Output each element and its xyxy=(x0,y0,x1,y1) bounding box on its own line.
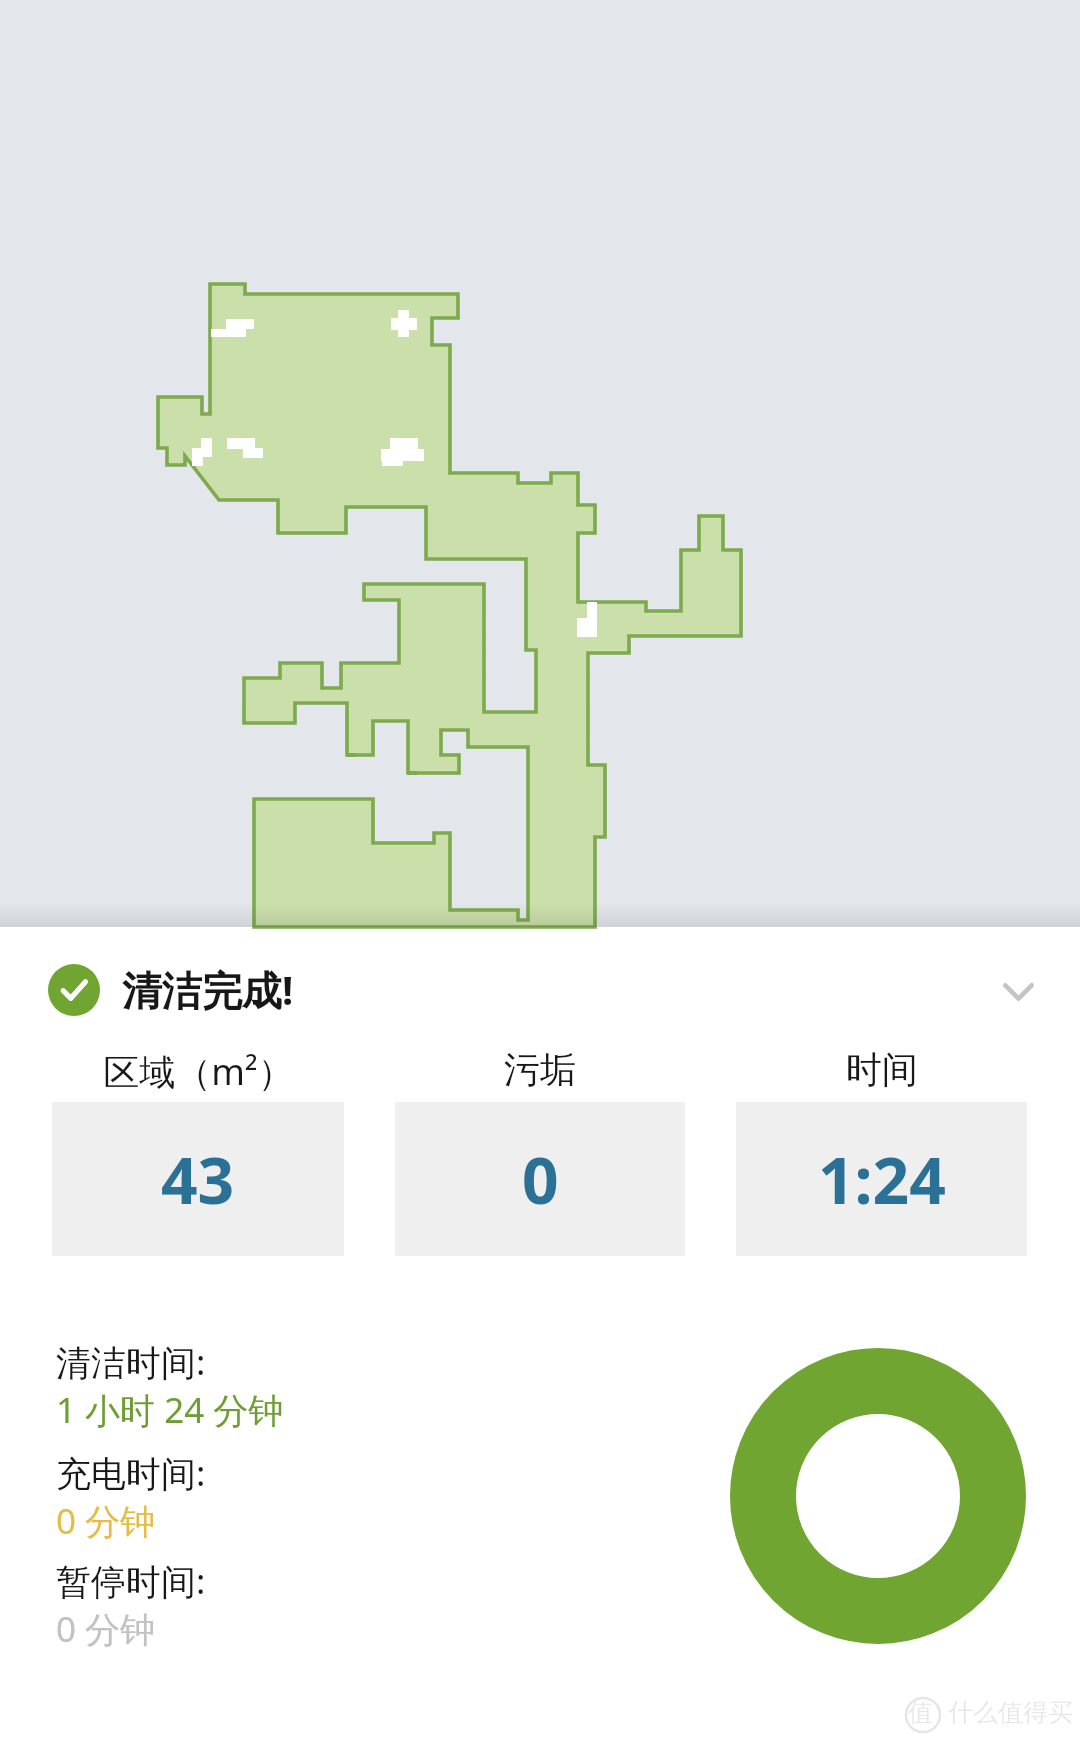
staticText: 区域（m²） xyxy=(103,1047,294,1096)
staticText: 暂停时间: xyxy=(56,1557,206,1605)
button[interactable]: Collapse xyxy=(988,962,1048,1022)
staticText: 清洁完成! xyxy=(122,962,294,1017)
staticText: 1 小时 24 分钟 xyxy=(56,1386,284,1434)
button[interactable]: 清洁完成! xyxy=(48,962,294,1017)
button[interactable]: 43 xyxy=(52,1102,344,1256)
staticText: 0 xyxy=(522,1136,559,1223)
staticText: 什么值得买 xyxy=(948,1697,1073,1728)
staticText: 值 xyxy=(908,1697,933,1728)
button[interactable]: 1:24 xyxy=(736,1102,1027,1256)
staticText: 0 分钟 xyxy=(56,1605,156,1653)
staticText: 1:24 xyxy=(818,1136,946,1223)
button[interactable]: 0 xyxy=(395,1102,685,1256)
staticText: 43 xyxy=(161,1136,235,1223)
staticText: 充电时间: xyxy=(56,1449,206,1497)
staticText: 污垢 xyxy=(504,1047,576,1092)
staticText: 时间 xyxy=(846,1047,918,1092)
staticText: 0 分钟 xyxy=(56,1497,156,1545)
staticText: 清洁时间: xyxy=(56,1338,206,1386)
